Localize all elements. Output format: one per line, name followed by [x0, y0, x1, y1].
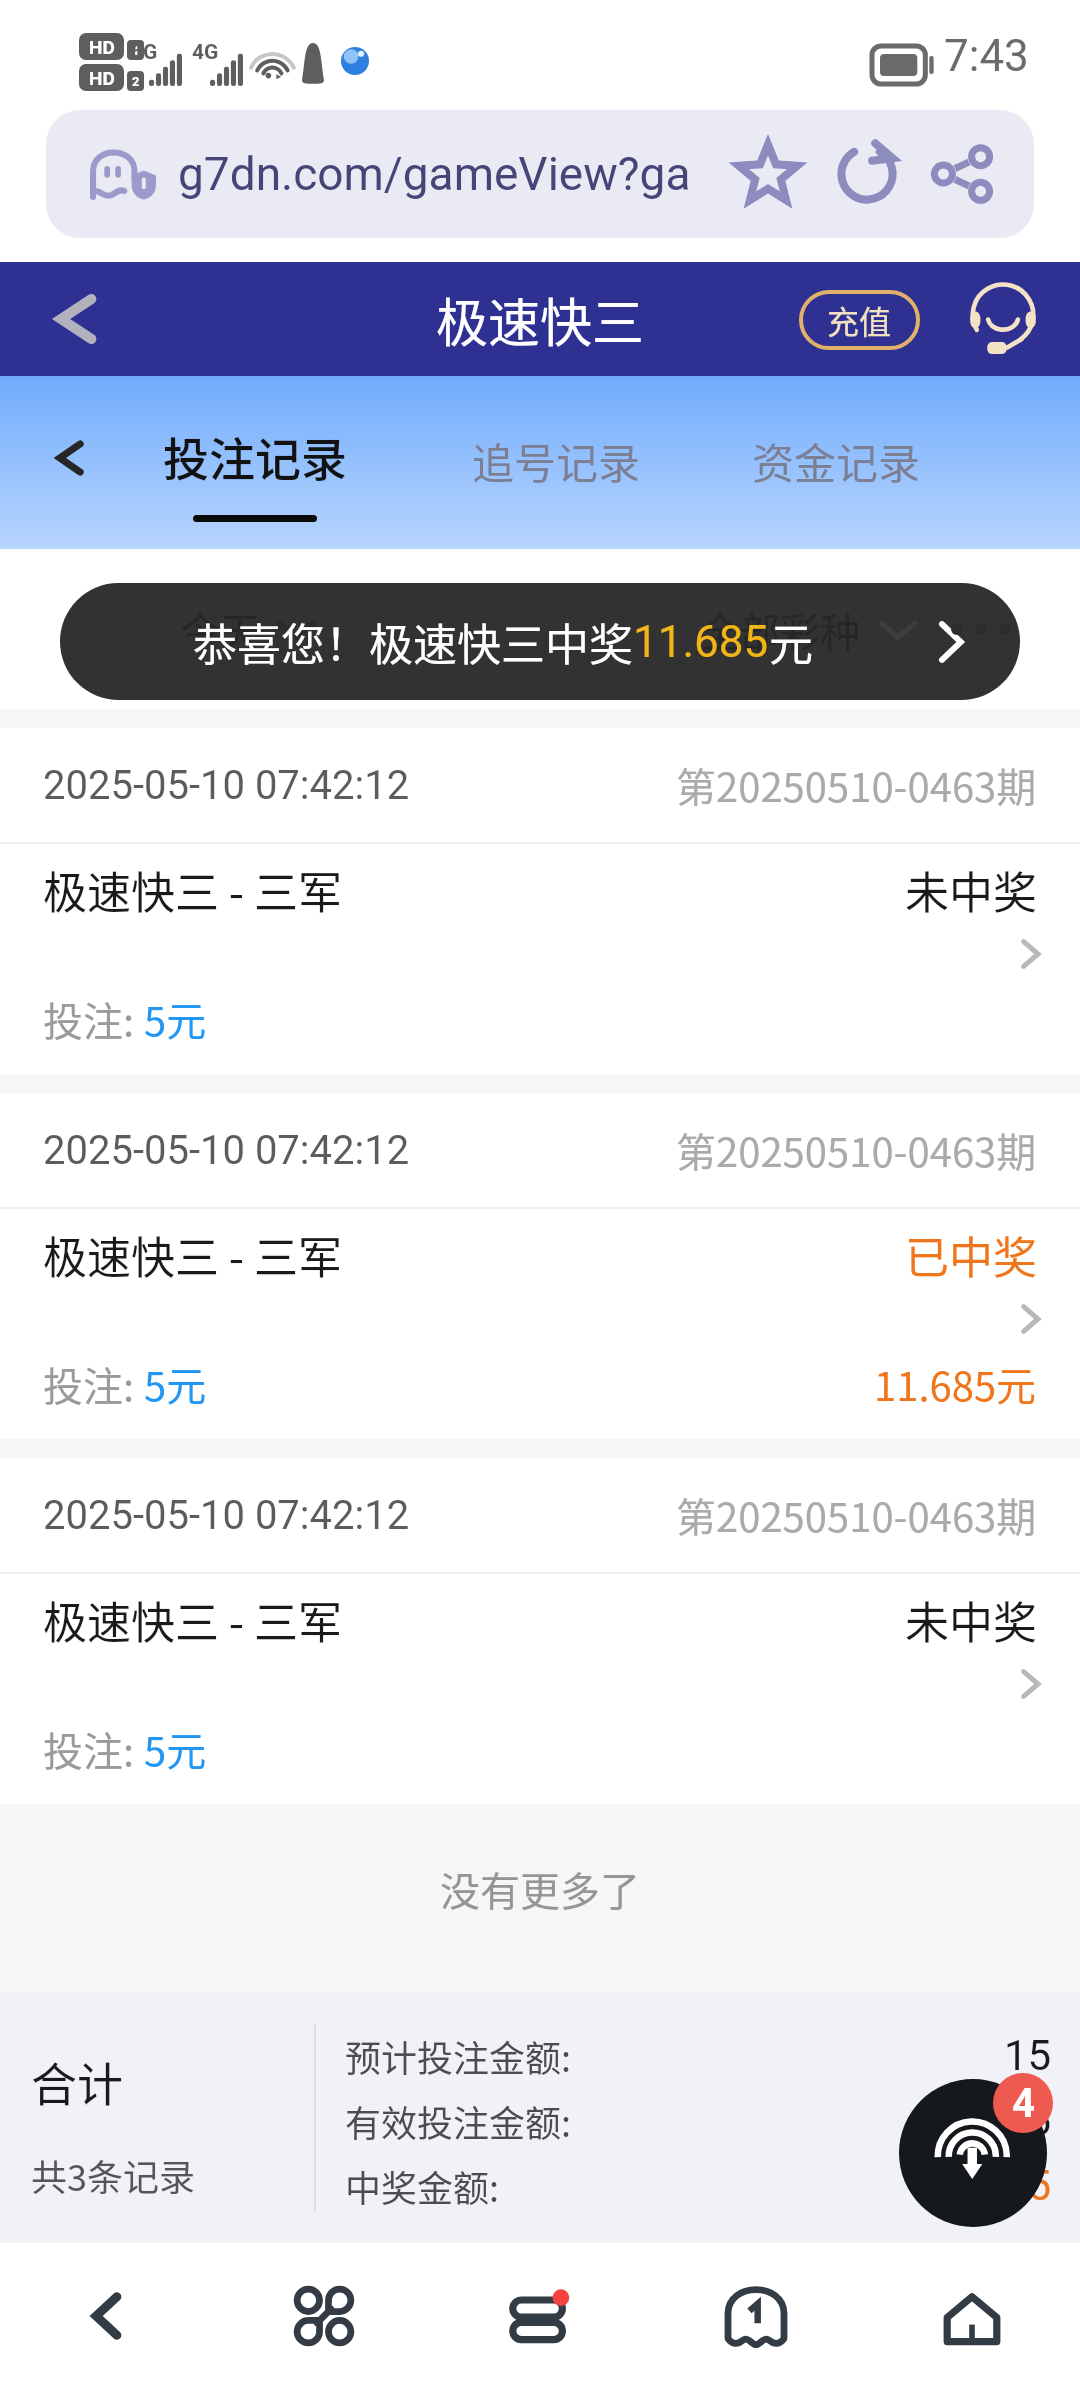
staticText: 未中奖: [905, 858, 1037, 922]
staticText: 2025-05-10 07:42:12: [43, 1492, 410, 1539]
button[interactable]: Reload: [827, 134, 907, 214]
staticText: 5元: [144, 1720, 207, 1778]
staticText: 共3条记录: [31, 2149, 195, 2201]
button[interactable]: g7dn.com/gameView?ga: [46, 110, 1034, 238]
staticText: 极速快三: [436, 282, 645, 357]
staticText: 5元: [144, 990, 207, 1048]
button[interactable]: Home: [864, 2243, 1080, 2388]
staticText: 全部彩种: [700, 601, 860, 659]
button[interactable]: Windows: [648, 2243, 864, 2388]
staticText: HD: [89, 67, 115, 89]
staticText: 1: [132, 43, 140, 58]
staticText: 全部彩种: [700, 589, 860, 647]
staticText: 资金记录: [752, 430, 921, 491]
staticText: 恭喜您！极速快三中奖: [193, 610, 633, 674]
staticText: 有效投注金额:: [345, 2095, 572, 2147]
staticText: 充值: [827, 297, 892, 343]
staticText: HD: [89, 36, 115, 58]
staticText: 5G: [131, 40, 158, 65]
staticText: 预计投注金额:: [345, 2030, 572, 2082]
staticText: 2: [132, 74, 140, 89]
staticText: 未中奖: [905, 1588, 1037, 1652]
staticText: 极速快三 - 三军: [43, 1588, 342, 1652]
staticText: 今天: [180, 601, 260, 659]
staticText: 投注:: [43, 990, 144, 1048]
staticText: 第20250510-0463期: [676, 1121, 1037, 1179]
staticText: 第20250510-0463期: [676, 1486, 1037, 1544]
staticText: 15: [1004, 2031, 1052, 2080]
button[interactable]: Back: [0, 2243, 216, 2388]
staticText: 投注记录: [163, 423, 347, 490]
staticText: 4G: [192, 40, 219, 65]
staticText: 15: [1004, 2096, 1052, 2145]
staticText: 已中奖: [905, 1223, 1037, 1287]
staticText: 2025-05-10 07:42:12: [43, 1127, 410, 1174]
staticText: 2025-05-10 07:42:12: [43, 762, 410, 809]
staticText: 7:43: [944, 30, 1029, 82]
button[interactable]: 全部彩种: [700, 589, 918, 647]
button[interactable]: 充值: [801, 292, 918, 348]
staticText: 11.685: [922, 2161, 1052, 2210]
staticText: 没有更多了: [440, 1860, 640, 1918]
staticText: 11.685元: [874, 1355, 1037, 1413]
staticText: 今天: [180, 589, 260, 647]
button[interactable]: Back: [38, 426, 102, 490]
button[interactable]: 投注记录: [155, 417, 355, 528]
button[interactable]: 极速快三 - 三军: [0, 1574, 1080, 1804]
staticText: g7dn.com/gameView?ga: [178, 147, 691, 201]
button[interactable]: 极速快三 - 三军: [0, 844, 1080, 1074]
button[interactable]: 追号记录: [464, 420, 649, 501]
button[interactable]: Customer service: [958, 274, 1048, 364]
staticText: 11.685: [633, 616, 769, 668]
staticText: 5元: [144, 1355, 207, 1413]
staticText: 投注:: [43, 1720, 144, 1778]
button[interactable]: Bookmark: [728, 134, 808, 214]
button[interactable]: 极速快三 - 三军: [0, 1209, 1080, 1439]
button[interactable]: Share: [922, 134, 1002, 214]
button[interactable]: Tabs: [432, 2243, 648, 2388]
staticText: 第20250510-0463期: [676, 756, 1037, 814]
staticText: 极速快三 - 三军: [43, 858, 342, 922]
button[interactable]: 资金记录: [744, 420, 929, 501]
staticText: 合计: [31, 2048, 123, 2115]
staticText: 追号记录: [472, 430, 641, 491]
staticText: 投注:: [43, 1355, 144, 1413]
staticText: 元: [769, 610, 813, 674]
staticText: 极速快三 - 三军: [43, 1223, 342, 1287]
button[interactable]: Download: [899, 2079, 1047, 2227]
button[interactable]: 今天: [180, 589, 318, 647]
staticText: 中奖金额:: [345, 2160, 500, 2212]
button[interactable]: Back: [37, 279, 117, 359]
staticText: 4: [1012, 2080, 1035, 2127]
button[interactable]: Tools: [216, 2243, 432, 2388]
